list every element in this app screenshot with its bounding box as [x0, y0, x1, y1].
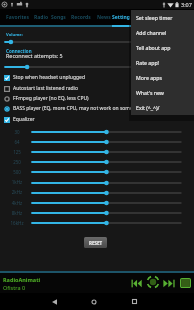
button[interactable]: FFmpeg player (no EQ, less CPU) [0, 94, 194, 103]
staticText: Reconnect attempts: 5 [6, 52, 63, 59]
button[interactable]: Set sleep timer [131, 10, 194, 25]
staticText: Equalizer [13, 116, 35, 123]
button[interactable] [32, 149, 181, 155]
staticText: RESET [89, 240, 103, 246]
button[interactable]: Autostart last listened radio [0, 84, 194, 93]
button[interactable]: Stop when headset unplugged [0, 73, 194, 82]
staticText: 500 [7, 169, 27, 175]
staticText: Stop when headset unplugged [13, 74, 85, 81]
button[interactable]: Exit (^_^)/ [131, 100, 194, 115]
staticText: 125 [7, 149, 27, 155]
staticText: Exit (^_^)/ [136, 104, 160, 111]
staticText: Connection [6, 48, 32, 54]
staticText: 4kHz [7, 200, 27, 206]
button[interactable] [32, 159, 181, 165]
button[interactable]: Next [162, 276, 176, 290]
staticText: 2kHz [7, 189, 27, 195]
staticText: Tell about app [136, 44, 171, 51]
button[interactable]: Songs [51, 9, 66, 25]
staticText: 3:07 [181, 1, 192, 8]
staticText: News [97, 14, 111, 21]
staticText: Rate app! [136, 59, 159, 66]
button[interactable] [32, 169, 181, 175]
staticText: RadioAnimati [3, 276, 41, 283]
button[interactable]: Settings [112, 9, 131, 25]
button[interactable]: Tell about app [131, 40, 194, 55]
staticText: What's new [136, 89, 164, 96]
button[interactable]: Home [86, 293, 102, 310]
staticText: 8kHz [7, 210, 27, 216]
button[interactable]: RESET [84, 237, 107, 248]
button[interactable] [32, 200, 181, 206]
button[interactable]: Play [146, 275, 160, 289]
staticText: Settings [112, 14, 131, 21]
button[interactable]: Stop [178, 276, 192, 290]
button[interactable] [32, 139, 181, 145]
staticText: 250 [7, 159, 27, 165]
staticText: 16kHz [7, 220, 27, 226]
button[interactable]: Equalizer [0, 115, 194, 124]
staticText: BASS player (EQ, more CPU, may not work … [13, 105, 153, 112]
button[interactable] [32, 129, 181, 135]
button[interactable]: More apps [131, 70, 194, 85]
button[interactable]: Add channel [131, 25, 194, 40]
button[interactable] [32, 190, 181, 196]
staticText: Set sleep timer [136, 14, 173, 21]
button[interactable] [5, 64, 189, 70]
button[interactable] [5, 39, 189, 45]
button[interactable] [32, 180, 181, 186]
staticText: Records [71, 14, 91, 21]
button[interactable]: Recents [126, 293, 142, 310]
button[interactable]: BASS player (EQ, more CPU, may not work … [0, 104, 194, 113]
staticText: 30 [7, 129, 27, 135]
staticText: Autostart last listened radio [13, 85, 78, 92]
staticText: Favorites [6, 14, 30, 21]
staticText: 1kHz [7, 179, 27, 185]
staticText: FFmpeg player (no EQ, less CPU) [13, 95, 89, 102]
button[interactable]: Records [66, 9, 95, 25]
button[interactable]: Previous [129, 276, 143, 290]
button[interactable] [32, 220, 181, 226]
button[interactable]: What's new [131, 85, 194, 100]
staticText: 64 [7, 139, 27, 145]
button[interactable]: News [95, 9, 112, 25]
button[interactable]: Rate app! [131, 55, 194, 70]
staticText: More apps [136, 74, 162, 81]
staticText: Ofistra 0 [3, 284, 26, 291]
staticText: Add channel [136, 29, 167, 36]
button[interactable]: Favorites [4, 9, 32, 25]
button[interactable]: Radio [32, 9, 51, 25]
button[interactable] [32, 210, 181, 216]
staticText: Songs [51, 14, 66, 21]
staticText: Volume: [6, 32, 23, 38]
staticText: Radio [34, 14, 49, 21]
button[interactable]: Back [46, 293, 62, 310]
